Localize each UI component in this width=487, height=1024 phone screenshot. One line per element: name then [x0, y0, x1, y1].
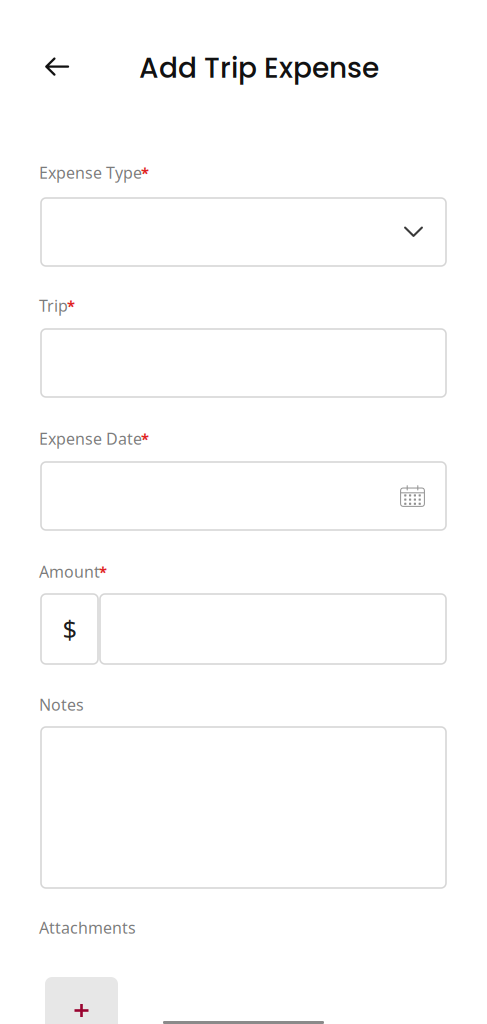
staticText: Notes: [39, 694, 84, 715]
staticText: *: [141, 163, 149, 182]
button[interactable]: Pick expense date: [41, 462, 446, 530]
button[interactable]: Back: [29, 42, 85, 92]
staticText: Trip: [39, 295, 68, 316]
staticText: $: [62, 612, 76, 646]
staticText: *: [141, 429, 149, 448]
staticText: Add Trip Expense: [139, 48, 379, 88]
button[interactable]: Notes: [41, 727, 446, 888]
staticText: Expense Type: [39, 162, 142, 183]
staticText: *: [67, 296, 75, 315]
staticText: *: [99, 562, 107, 581]
staticText: Attachments: [39, 917, 136, 938]
button[interactable]: Add attachment: [45, 977, 118, 1024]
button[interactable]: Amount: [100, 594, 446, 664]
staticText: Amount: [39, 561, 100, 582]
button[interactable]: Trip: [41, 329, 446, 397]
staticText: Expense Date: [39, 428, 142, 449]
button[interactable]: Select expense type: [41, 198, 446, 266]
